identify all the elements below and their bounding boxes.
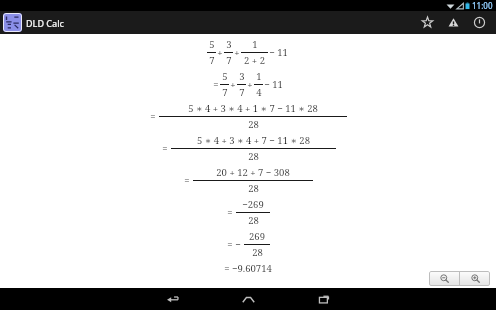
staticText: = (213, 78, 219, 91)
staticText: = (227, 238, 233, 251)
button[interactable]: Favorite (414, 11, 440, 34)
button[interactable]: Zoom out (429, 271, 459, 286)
staticText: − (235, 238, 241, 251)
staticText: 3 (226, 38, 232, 51)
staticText: 5 (222, 70, 228, 83)
button[interactable]: Home (231, 288, 265, 310)
staticText: = (184, 174, 190, 187)
staticText: 28 (248, 214, 259, 227)
staticText: 5 ∗ 4 + 3 ∗ 4 + 7 − 11 ∗ 28 (197, 134, 310, 147)
staticText: = −9.60714 (224, 262, 272, 275)
button[interactable]: Info (466, 11, 492, 34)
staticText: 28 (248, 118, 259, 131)
staticText: 7 (222, 86, 228, 99)
staticText: = (162, 142, 168, 155)
staticText: + (230, 78, 236, 91)
staticText: + (234, 46, 240, 59)
staticText: 3 (239, 70, 245, 83)
staticText: DLD Calc (26, 17, 65, 29)
staticText: − 11 (269, 46, 288, 59)
staticText: 2 + 2 (244, 54, 265, 67)
staticText: 5 ∗ 4 + 3 ∗ 4 + 1 ∗ 7 − 11 ∗ 28 (188, 102, 318, 115)
button[interactable]: Zoom in (460, 271, 490, 286)
staticText: + (217, 46, 223, 59)
button[interactable]: Warning (440, 11, 466, 34)
staticText: 11:00 (472, 0, 493, 11)
staticText: 1 (252, 38, 258, 51)
staticText: −269 (242, 198, 264, 211)
staticText: 28 (248, 150, 259, 163)
staticText: + (247, 78, 253, 91)
button[interactable]: Recents (307, 288, 341, 310)
staticText: 28 (248, 182, 259, 195)
staticText: 5 (209, 38, 215, 51)
staticText: = (150, 110, 156, 123)
staticText: 20 + 12 + 7 − 308 (216, 166, 290, 179)
staticText: 28 (252, 246, 263, 259)
staticText: 1 (256, 70, 262, 83)
staticText: − 11 (264, 78, 283, 91)
button[interactable]: Back (155, 288, 189, 310)
staticText: 269 (249, 230, 265, 243)
staticText: 7 (209, 54, 215, 67)
staticText: 7 (239, 86, 245, 99)
staticText: 7 (226, 54, 232, 67)
staticText: = (227, 206, 233, 219)
staticText: 4 (256, 86, 262, 99)
button[interactable]: App icon (3, 13, 22, 32)
